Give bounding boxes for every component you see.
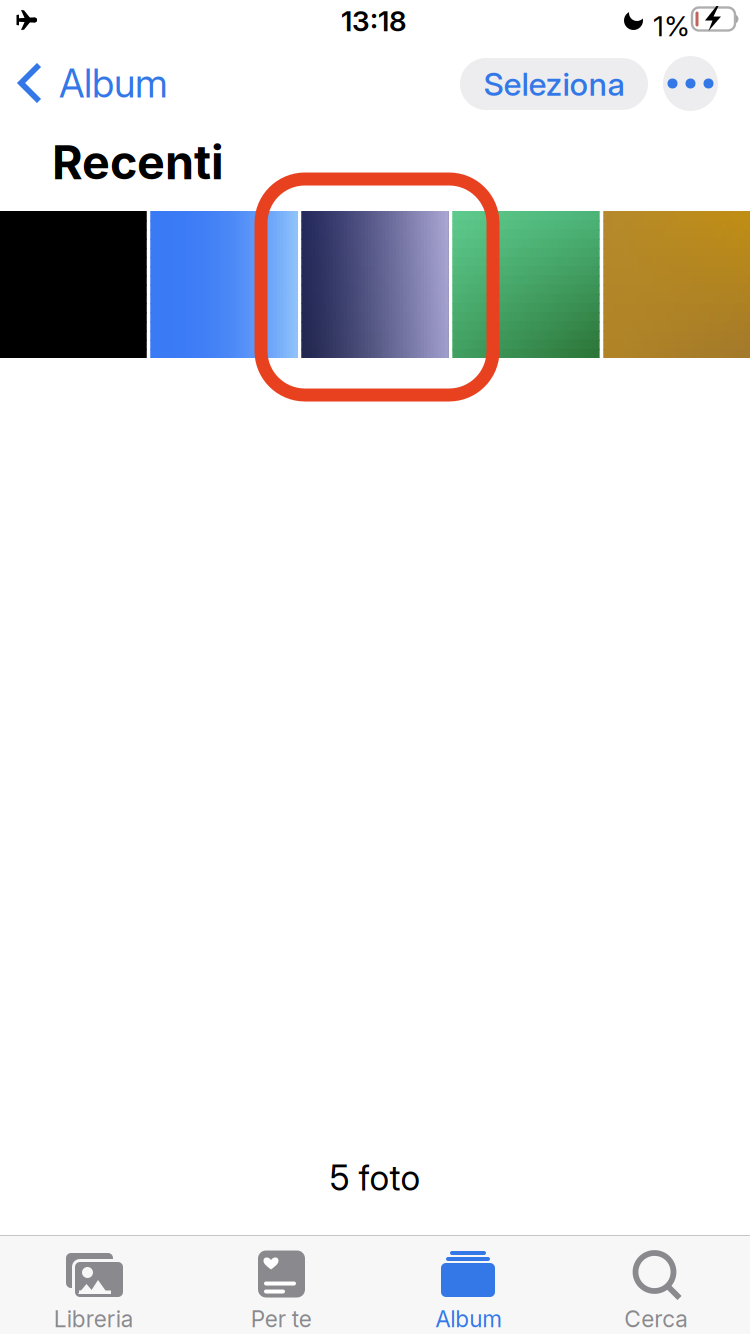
staticText: Seleziona: [483, 65, 624, 103]
staticText: Libreria: [54, 1305, 134, 1333]
staticText: 1%: [653, 9, 690, 43]
staticText: Album: [435, 1305, 502, 1333]
staticText: Recenti: [52, 134, 224, 190]
button[interactable]: Album: [0, 48, 180, 114]
button[interactable]: Seleziona: [460, 58, 648, 110]
staticText: Album: [59, 60, 168, 107]
button[interactable]: Cerca: [562, 1236, 750, 1334]
button[interactable]: Per te: [187, 1236, 375, 1334]
staticText: Cerca: [624, 1305, 688, 1333]
staticText: 5 foto: [329, 1157, 420, 1199]
button[interactable]: Libreria: [0, 1236, 187, 1334]
staticText: Per te: [251, 1305, 312, 1333]
staticText: 13:18: [341, 4, 407, 38]
button[interactable]: More options: [663, 56, 718, 111]
button[interactable]: Album: [375, 1236, 562, 1334]
